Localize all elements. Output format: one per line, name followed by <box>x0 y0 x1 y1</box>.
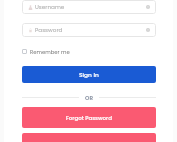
button[interactable]: Username <box>22 0 156 14</box>
staticText: Sign In <box>79 71 99 79</box>
button[interactable]: Sign In <box>22 66 156 83</box>
staticText: OR <box>85 94 93 102</box>
button[interactable]: Create account <box>22 133 156 142</box>
button[interactable]: Password <box>22 23 156 37</box>
staticText: Username <box>35 3 65 11</box>
staticText: Remember me <box>30 48 70 55</box>
staticText: Forgot Password <box>66 114 112 122</box>
staticText: Password <box>35 26 63 34</box>
button[interactable]: Forgot Password <box>22 107 156 128</box>
button[interactable]: Remember me <box>22 46 70 56</box>
